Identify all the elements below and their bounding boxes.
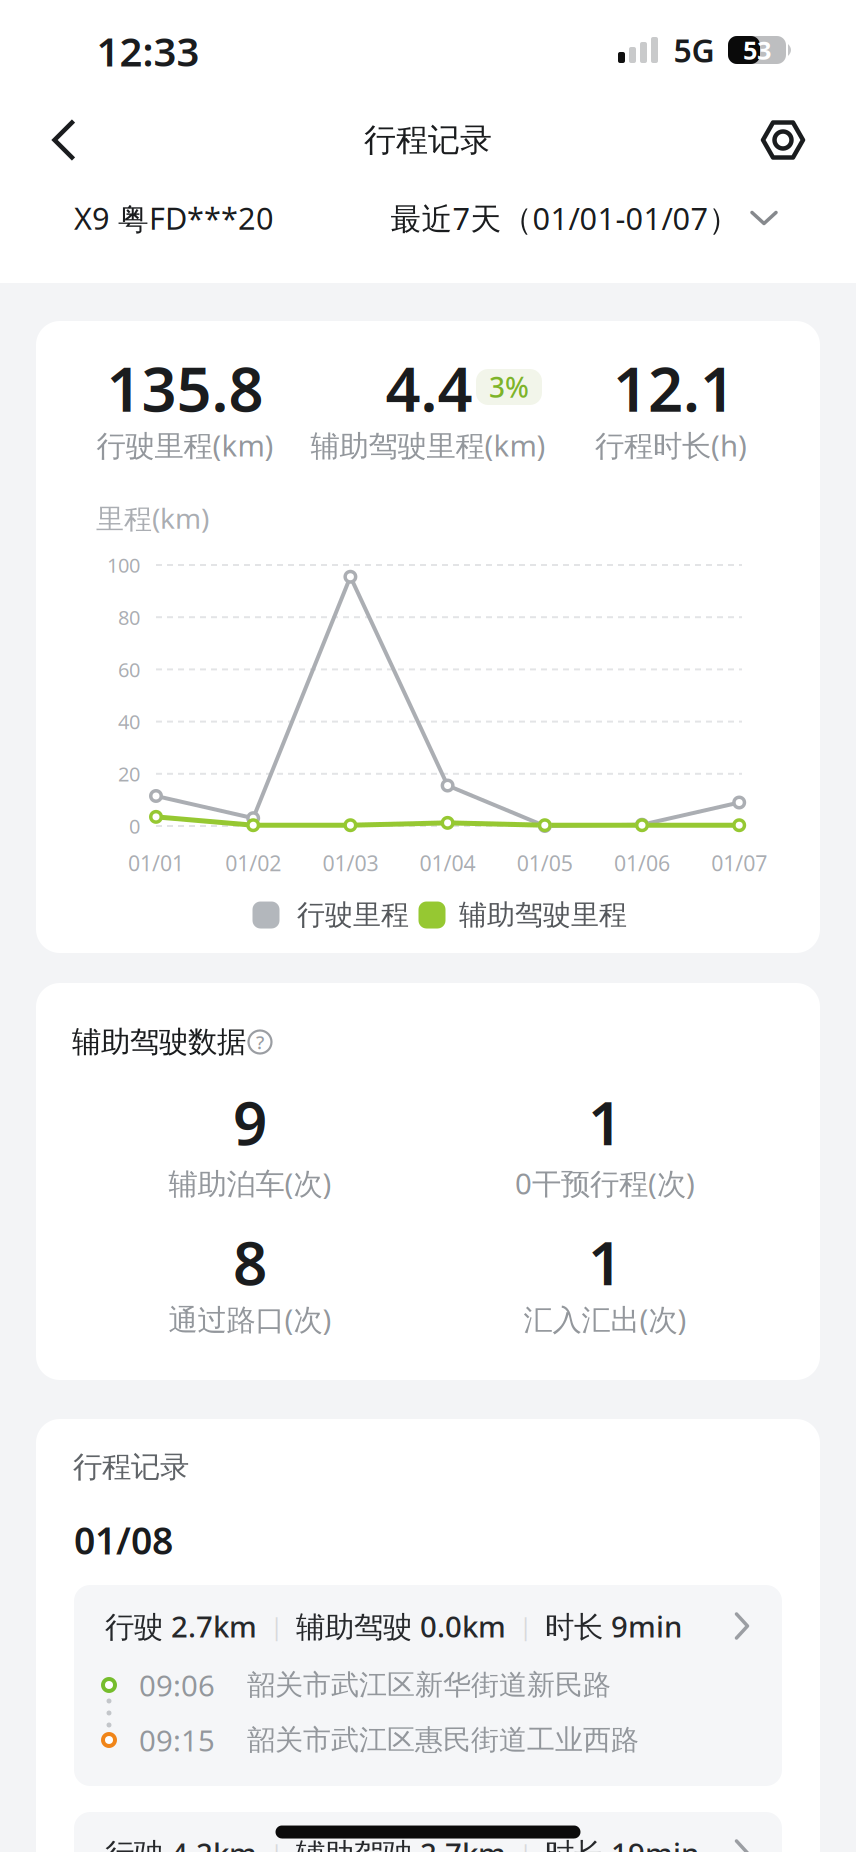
staticText: 12.1 xyxy=(613,347,735,429)
staticText: | xyxy=(519,1610,532,1642)
staticText: 时长 9min xyxy=(545,1606,682,1645)
staticText: 53 xyxy=(743,33,771,67)
staticText: | xyxy=(270,1610,283,1642)
button[interactable] xyxy=(753,110,813,170)
staticText: 8 xyxy=(233,1222,267,1302)
staticText: 01/01 xyxy=(128,849,184,877)
staticText: 135.8 xyxy=(106,347,263,429)
button[interactable]: 最近7天（01/01-01/07） xyxy=(350,188,790,248)
staticText: 行程记录 xyxy=(73,1449,189,1485)
staticText: 辅助驾驶里程 xyxy=(459,898,627,932)
staticText: 60 xyxy=(118,656,140,683)
staticText: 汇入汇出(次) xyxy=(523,1299,686,1338)
staticText: 辅助驾驶 2.7km xyxy=(296,1833,506,1852)
button[interactable] xyxy=(34,110,94,170)
button[interactable]: 行驶 4.2km xyxy=(74,1812,782,1852)
staticText: 12:33 xyxy=(96,24,199,77)
staticText: 辅助驾驶数据 xyxy=(72,1024,246,1060)
staticText: 0干预行程(次) xyxy=(515,1163,695,1202)
staticText: 01/08 xyxy=(74,1515,173,1565)
staticText: 01/06 xyxy=(614,849,670,877)
staticText: 行驶 4.2km xyxy=(105,1833,257,1852)
staticText: 80 xyxy=(118,604,140,630)
staticText: 09:06 xyxy=(139,1665,215,1704)
staticText: 09:15 xyxy=(139,1720,215,1759)
staticText: X9 粤FD***20 xyxy=(74,198,274,238)
staticText: 5G xyxy=(673,29,714,71)
staticText: 40 xyxy=(118,708,140,735)
staticText: 01/07 xyxy=(711,849,767,877)
staticText: 韶关市武江区新华街道新民路 xyxy=(247,1668,611,1702)
staticText: 辅助驾驶里程(km) xyxy=(310,425,545,464)
staticText: 0 xyxy=(129,813,140,839)
staticText: 01/05 xyxy=(517,849,573,877)
staticText: 1 xyxy=(588,1222,622,1302)
staticText: 01/04 xyxy=(420,849,476,877)
button[interactable]: 行驶 2.7km xyxy=(74,1585,782,1786)
staticText: 行驶 2.7km xyxy=(105,1606,257,1645)
staticText: 里程(km) xyxy=(96,499,209,537)
staticText: 时长 19min xyxy=(545,1833,699,1852)
button[interactable]: ? xyxy=(242,1024,278,1060)
staticText: 01/02 xyxy=(225,849,281,877)
button[interactable]: X9 粤FD***20 xyxy=(74,188,354,248)
staticText: 3% xyxy=(489,368,529,406)
staticText: 行驶里程 xyxy=(297,898,409,932)
staticText: 20 xyxy=(118,760,140,787)
staticText: 韶关市武江区惠民街道工业西路 xyxy=(247,1723,639,1757)
staticText: 行程记录 xyxy=(364,120,492,160)
staticText: 辅助驾驶 0.0km xyxy=(296,1606,506,1645)
staticText: 100 xyxy=(107,552,140,578)
staticText: 行驶里程(km) xyxy=(96,425,273,464)
staticText: ? xyxy=(256,1030,264,1054)
staticText: 01/03 xyxy=(322,849,378,877)
staticText: 辅助泊车(次) xyxy=(168,1163,331,1202)
staticText: 1 xyxy=(588,1082,622,1162)
staticText: 最近7天（01/01-01/07） xyxy=(390,198,739,238)
staticText: 9 xyxy=(233,1082,267,1162)
staticText: | xyxy=(270,1837,283,1852)
staticText: 通过路口(次) xyxy=(168,1299,331,1338)
staticText: 行程时长(h) xyxy=(595,425,747,464)
staticText: | xyxy=(519,1837,532,1852)
staticText: 4.4 xyxy=(385,347,472,429)
